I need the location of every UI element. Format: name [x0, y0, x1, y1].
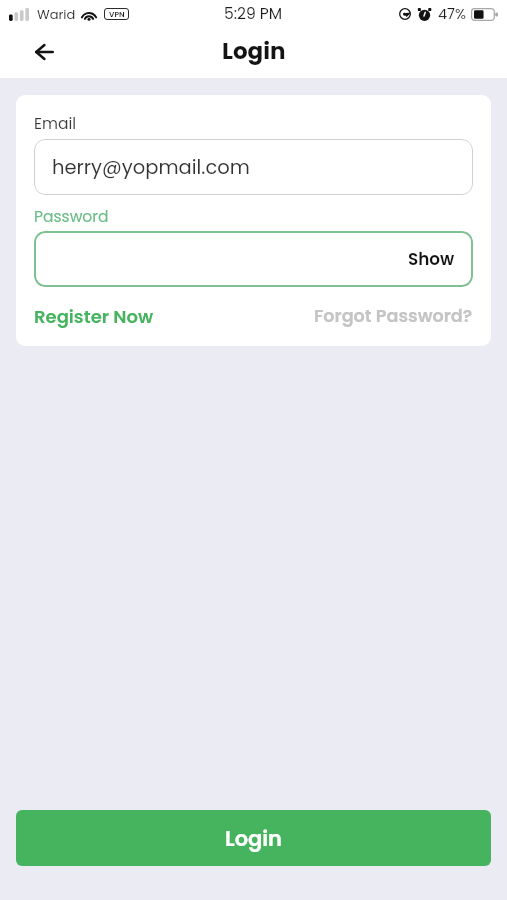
button[interactable]: Show — [34, 231, 473, 287]
staticText: 47% — [438, 4, 467, 24]
staticText: Password — [34, 206, 109, 228]
button[interactable]: Back — [22, 31, 66, 75]
staticText: Login — [222, 35, 286, 67]
staticText: Forgot Password? — [314, 304, 473, 329]
staticText: Email — [34, 113, 77, 135]
staticText: 5:29 PM — [224, 3, 283, 25]
button[interactable]: Login — [16, 810, 491, 866]
staticText: herry@yopmail.com — [52, 154, 250, 181]
staticText: VPN — [109, 9, 125, 20]
staticText: Register Now — [34, 304, 154, 329]
staticText: Login — [225, 824, 282, 853]
button[interactable]: Show — [408, 247, 455, 271]
button[interactable]: herry@yopmail.com — [34, 139, 473, 195]
button[interactable]: Forgot Password? — [314, 304, 473, 329]
staticText: Warid — [37, 5, 76, 23]
staticText: Show — [408, 247, 455, 271]
button[interactable]: Register Now — [34, 304, 154, 329]
